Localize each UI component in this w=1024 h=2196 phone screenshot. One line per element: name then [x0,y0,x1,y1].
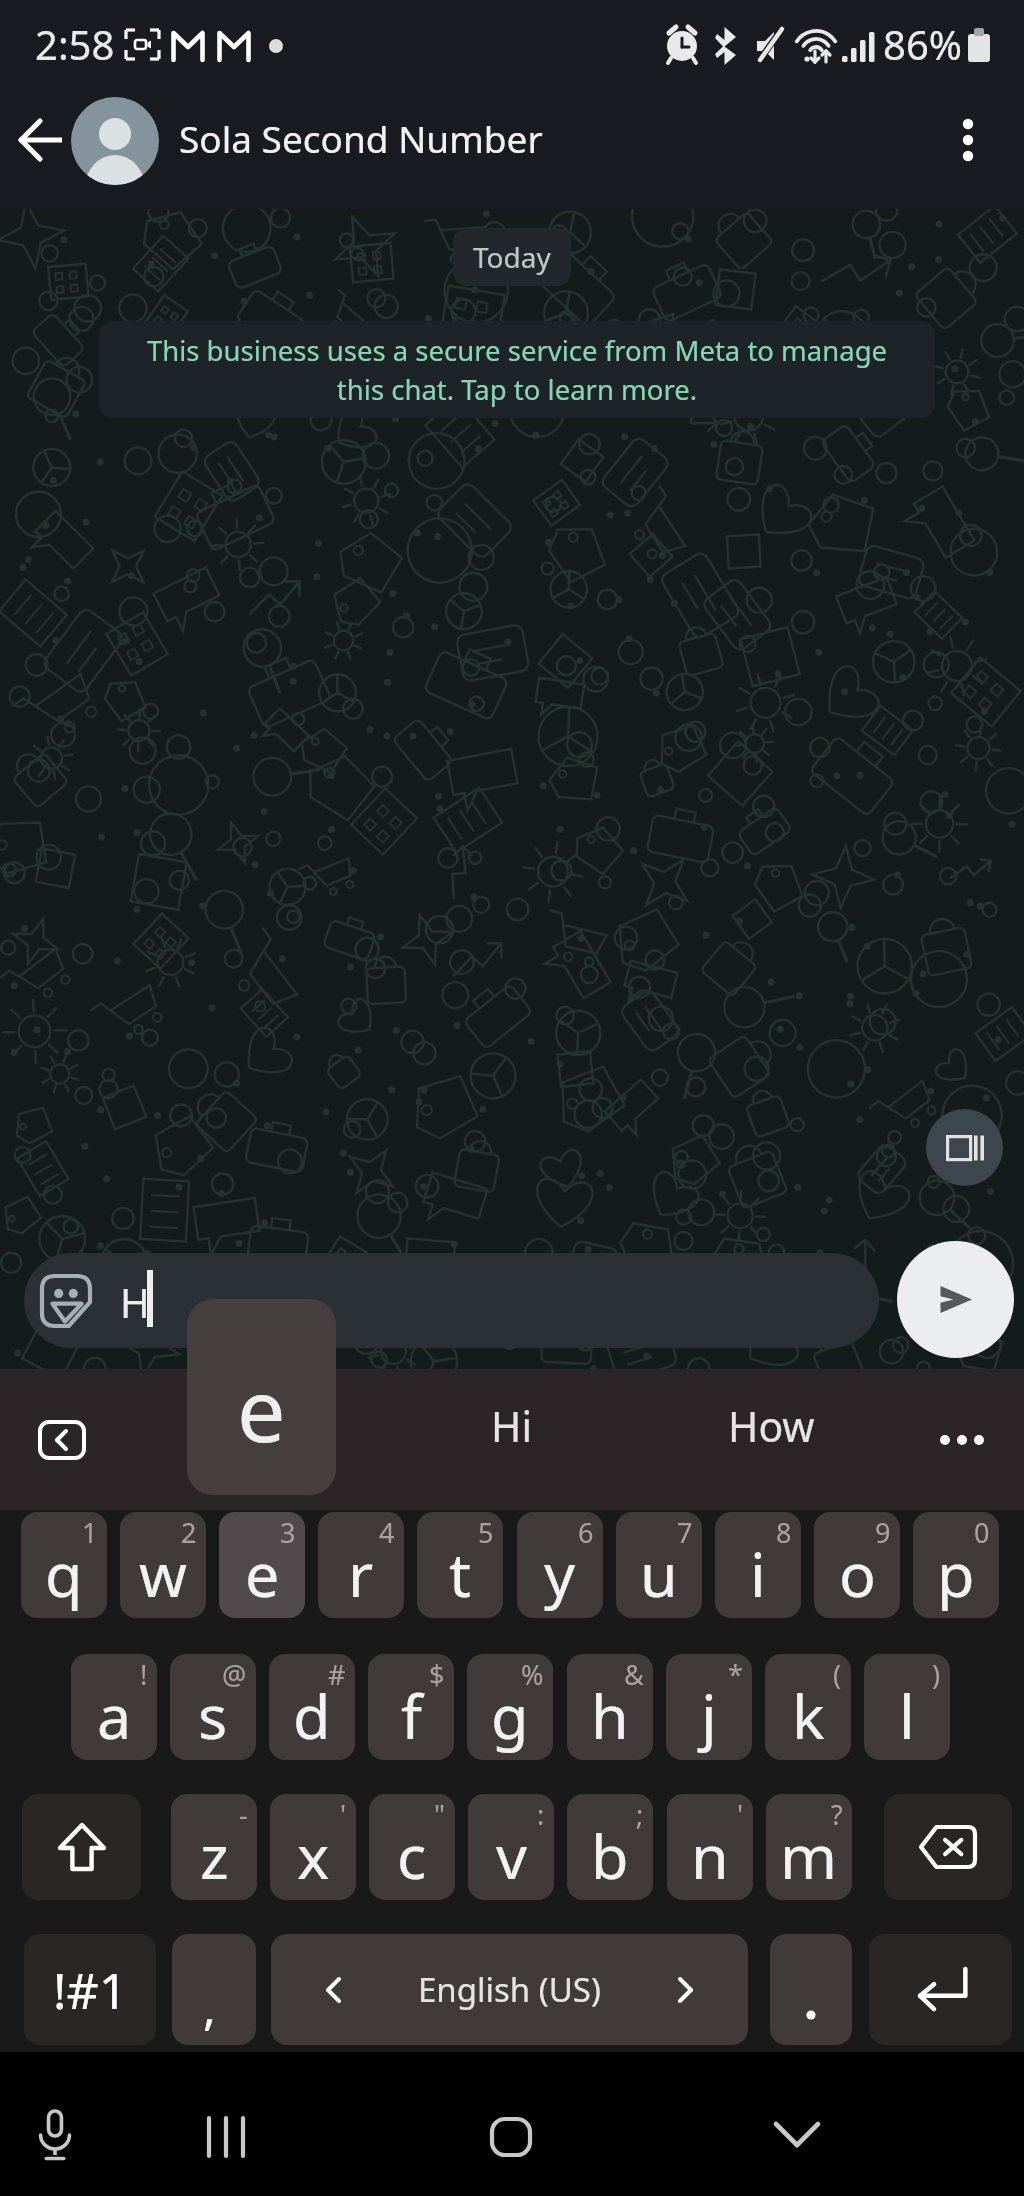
button[interactable]: !#1 [24,1934,156,2045]
button[interactable]: - [171,1794,257,1900]
staticText: # [328,1656,346,1693]
staticText: !#1 [53,1956,128,2024]
staticText: * [728,1656,743,1693]
staticText: x [297,1814,330,1897]
staticText: h [591,1674,629,1757]
button[interactable]: $ [368,1654,454,1760]
staticText: g [491,1674,529,1757]
button[interactable]: 8 [715,1512,801,1618]
staticText: u [640,1532,678,1615]
button[interactable]: This business uses a secure service from… [99,321,935,418]
button[interactable]: Hide keyboard [758,2096,836,2174]
staticText: Hi [491,1398,532,1454]
button[interactable]: Shift [22,1794,141,1900]
button[interactable]: More options [932,104,1004,176]
button[interactable]: Today [453,228,571,286]
button[interactable]: ? [766,1794,852,1900]
button[interactable]: @ [170,1654,256,1760]
button[interactable]: 4 [318,1512,404,1618]
button[interactable]: More suggestions [920,1407,1004,1473]
staticText: ' [340,1796,347,1833]
staticText: - [239,1796,248,1833]
button[interactable]: # [269,1654,355,1760]
button[interactable]: 5 [417,1512,503,1618]
staticText: 5 [478,1514,494,1551]
button[interactable]: Recent apps [187,2098,265,2176]
button[interactable]: 9 [814,1512,900,1618]
staticText: q [45,1532,83,1615]
button[interactable]: 1 [21,1512,107,1618]
staticText: p [937,1532,975,1615]
staticText: o [839,1532,876,1615]
staticText: s [198,1674,228,1757]
button[interactable]: Home [472,2098,550,2176]
button[interactable]: Hi [416,1393,606,1459]
button[interactable]: Voice input [16,2096,94,2174]
staticText: This business uses a secure service from… [127,332,907,408]
staticText: $ [429,1656,445,1693]
staticText: r [348,1532,374,1615]
button[interactable]: 7 [616,1512,702,1618]
button[interactable]: 0 [913,1512,999,1618]
staticText: % [521,1656,544,1693]
button[interactable]: 3 [219,1512,305,1618]
button[interactable]: Send [897,1241,1014,1358]
button[interactable]: % [467,1654,553,1760]
button[interactable]: Space, English (US) [271,1934,748,2045]
button[interactable]: ) [864,1654,950,1760]
staticText: " [434,1796,446,1833]
staticText: 8 [776,1514,792,1551]
staticText: ; [636,1796,644,1833]
button[interactable]: : [468,1794,554,1900]
button[interactable]: Previous [22,1407,102,1473]
button[interactable]: ' [667,1794,753,1900]
staticText: 2 [181,1514,197,1551]
staticText: m [780,1814,838,1897]
button[interactable]: ' [270,1794,356,1900]
button[interactable]: ! [71,1654,157,1760]
button[interactable]: 2 [120,1512,206,1618]
button[interactable]: " [369,1794,455,1900]
staticText: H [120,1275,150,1329]
button[interactable]: How [673,1393,869,1459]
button[interactable]: Back [5,104,77,176]
staticText: 2:58 [35,17,115,71]
staticText: , [203,1974,216,2039]
staticText: 1 [82,1514,98,1551]
staticText: @ [222,1656,247,1693]
button[interactable]: H [24,1253,879,1348]
staticText: & [624,1656,644,1693]
button[interactable]: 6 [517,1512,603,1618]
staticText: ( [833,1656,842,1693]
button[interactable]: Enter [869,1934,1012,2045]
staticText: z [200,1814,229,1897]
button[interactable] [770,1934,852,2045]
button[interactable]: Contact photo [71,97,159,185]
button[interactable]: ( [765,1654,851,1760]
staticText: How [728,1398,815,1454]
button[interactable]: , [172,1934,256,2045]
staticText: 86% [883,17,962,71]
button[interactable]: * [666,1654,752,1760]
staticText: English (US) [418,1967,601,2012]
staticText: 0 [974,1514,990,1551]
staticText: 6 [578,1514,594,1551]
staticText: ? [831,1796,843,1833]
staticText: Sola Second Number [179,113,543,163]
staticText: ! [140,1656,148,1693]
staticText: j [701,1674,717,1757]
button[interactable]: Split screen [926,1109,1003,1186]
button[interactable]: Backspace [884,1794,1012,1900]
button[interactable]: ; [567,1794,653,1900]
staticText: v [496,1814,527,1897]
staticText: 4 [379,1514,395,1551]
staticText: f [401,1674,422,1757]
staticText: w [139,1532,187,1615]
staticText: 3 [280,1514,296,1551]
staticText: e [245,1532,280,1615]
staticText: y [544,1532,576,1615]
button[interactable]: & [567,1654,653,1760]
staticText: l [899,1674,915,1757]
staticText: e [237,1350,286,1467]
staticText: 9 [875,1514,891,1551]
